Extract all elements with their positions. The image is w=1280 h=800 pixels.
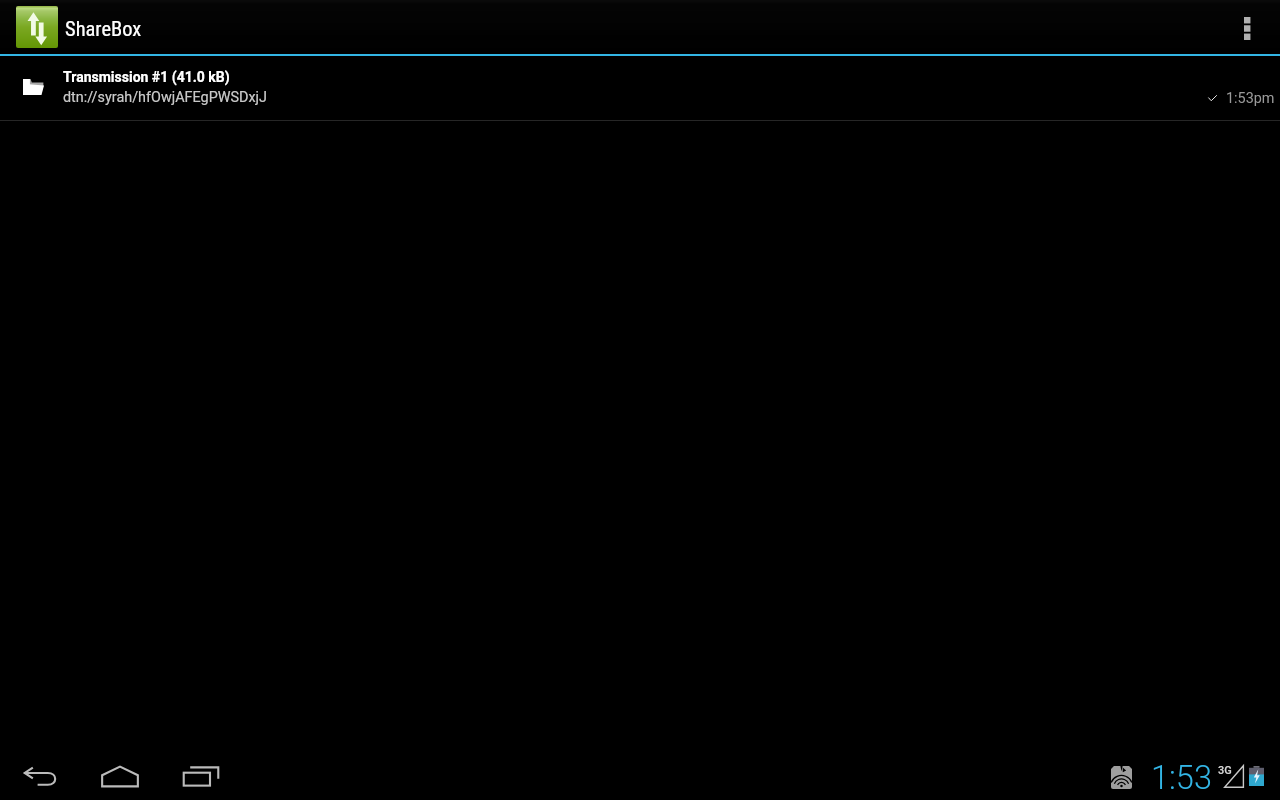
staticText: 1:53pm	[1226, 90, 1275, 107]
staticText: 1:53	[1151, 759, 1212, 797]
button[interactable]: Transmission #1 (41.0 kB)	[0, 56, 1280, 120]
staticText: ShareBox	[65, 17, 142, 41]
button[interactable]: More options	[1216, 0, 1280, 54]
button[interactable]: Recent apps	[177, 746, 225, 800]
button[interactable]: ShareBox	[0, 0, 156, 54]
button[interactable]: Back	[17, 746, 65, 800]
staticText: 3G	[1218, 764, 1232, 777]
staticText: dtn://syrah/hfOwjAFEgPWSDxjJ	[63, 89, 267, 106]
staticText: Transmission #1 (41.0 kB)	[63, 69, 230, 85]
button[interactable]: Home	[96, 746, 144, 800]
